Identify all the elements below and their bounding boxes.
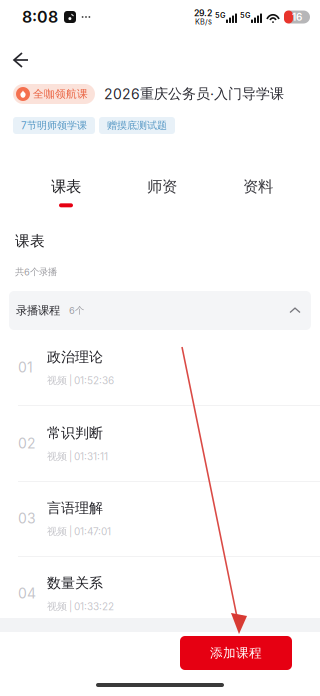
staticText: 课表 (51, 177, 81, 196)
staticText: 视频 | 01:33:22 (47, 600, 114, 613)
staticText: 视频 | 01:47:01 (47, 525, 111, 538)
button[interactable]: 课表 (18, 168, 114, 216)
button[interactable]: 01 (0, 330, 320, 406)
staticText: 录播课程 (16, 303, 60, 318)
staticText: 5G (215, 11, 225, 20)
staticText: 6个 (69, 305, 84, 316)
staticText: 共6个录播 (15, 266, 57, 278)
staticText: 资料 (243, 177, 273, 196)
staticText: 常识判断 (47, 424, 103, 442)
staticText: 政治理论 (47, 348, 103, 366)
staticText: 视频 | 01:52:36 (47, 374, 114, 387)
staticText: 添加课程 (210, 645, 262, 661)
staticText: 师资 (147, 177, 177, 196)
staticText: 5G (240, 11, 250, 20)
staticText: 01 (18, 359, 33, 376)
staticText: 全咖领航课 (33, 87, 88, 101)
staticText: 02 (18, 435, 36, 452)
button[interactable]: 录播课程 (9, 291, 311, 330)
button[interactable]: Back (7, 45, 41, 75)
staticText: 04 (18, 585, 36, 602)
button[interactable]: 02 (0, 406, 320, 482)
staticText: 2026重庆公务员·入门导学课 (104, 85, 284, 103)
staticText: 赠摸底测试题 (107, 119, 167, 132)
staticText: 言语理解 (47, 499, 103, 517)
button[interactable]: 04 (0, 556, 320, 632)
staticText: 03 (18, 510, 36, 527)
staticText: 16 (292, 11, 302, 23)
staticText: 课表 (15, 232, 45, 250)
staticText: 8:08 (22, 7, 58, 27)
staticText: 7节明师领学课 (21, 119, 87, 132)
button[interactable]: 03 (0, 481, 320, 557)
button[interactable]: 添加课程 (180, 636, 292, 670)
button[interactable]: 师资 (114, 168, 210, 216)
staticText: 视频 | 01:31:11 (47, 450, 108, 463)
staticText: 29.2 (194, 8, 212, 18)
button[interactable]: 资料 (210, 168, 306, 216)
staticText: 数量关系 (47, 574, 103, 592)
staticText: KB/s (195, 17, 212, 26)
